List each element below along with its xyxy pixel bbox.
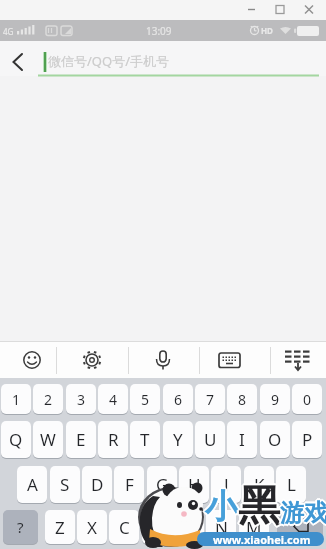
- staticText: 黑: [237, 481, 279, 534]
- button[interactable]: 2: [33, 384, 63, 414]
- staticText: 13:09: [146, 24, 172, 38]
- staticText: 小: [206, 485, 239, 527]
- button[interactable]: X: [77, 510, 107, 544]
- staticText: 游戏: [280, 496, 326, 526]
- button[interactable]: G: [147, 466, 177, 503]
- button[interactable]: U: [195, 421, 225, 458]
- staticText: 黑: [239, 479, 281, 532]
- button[interactable]: Z: [45, 510, 75, 544]
- staticText: 游戏: [278, 498, 326, 528]
- button[interactable]: 5: [130, 384, 160, 414]
- staticText: A: [27, 473, 38, 496]
- staticText: H: [188, 473, 201, 496]
- staticText: 7: [206, 390, 215, 409]
- staticText: 小: [204, 485, 237, 527]
- staticText: 游戏: [280, 498, 326, 528]
- button[interactable]: B: [174, 510, 204, 544]
- staticText: 微信号/QQ号/手机号: [48, 52, 169, 70]
- staticText: 9: [271, 390, 280, 409]
- button[interactable]: S: [50, 466, 80, 503]
- staticText: 黑: [236, 480, 278, 533]
- staticText: I: [239, 428, 245, 451]
- button[interactable]: 0: [292, 384, 322, 414]
- staticText: N: [215, 516, 228, 539]
- staticText: www.xiaohei.com: [213, 532, 311, 546]
- staticText: ?: [17, 517, 24, 537]
- button[interactable]: ?: [3, 510, 38, 544]
- button[interactable]: P: [292, 421, 322, 458]
- staticText: M: [246, 516, 262, 539]
- button[interactable]: 1: [1, 384, 31, 414]
- staticText: 小: [204, 487, 237, 529]
- button[interactable]: D: [82, 466, 112, 503]
- staticText: E: [76, 428, 86, 451]
- button[interactable]: [277, 510, 323, 544]
- staticText: 小: [205, 484, 238, 526]
- staticText: S: [60, 473, 70, 496]
- staticText: 0: [303, 390, 312, 409]
- staticText: 游戏: [281, 499, 326, 529]
- button[interactable]: K: [244, 466, 274, 503]
- button[interactable]: [56, 342, 128, 378]
- staticText: U: [204, 428, 217, 451]
- staticText: K: [254, 473, 265, 496]
- staticText: T: [140, 428, 150, 451]
- staticText: 黑: [238, 482, 280, 535]
- button[interactable]: F: [114, 466, 144, 503]
- staticText: HD: [261, 25, 273, 36]
- button[interactable]: [0, 41, 326, 76]
- button[interactable]: [199, 342, 270, 378]
- staticText: 黑: [240, 480, 282, 533]
- button[interactable]: 3: [66, 384, 96, 414]
- staticText: 3: [77, 390, 86, 409]
- staticText: P: [302, 428, 313, 451]
- staticText: J: [224, 473, 229, 496]
- button[interactable]: O: [260, 421, 290, 458]
- button[interactable]: M: [239, 510, 269, 544]
- button[interactable]: H: [179, 466, 209, 503]
- staticText: Z: [55, 516, 65, 539]
- button[interactable]: N: [206, 510, 236, 544]
- button[interactable]: Q: [1, 421, 31, 458]
- button[interactable]: 8: [227, 384, 257, 414]
- staticText: 小: [206, 487, 239, 529]
- button[interactable]: C: [109, 510, 139, 544]
- staticText: B: [183, 516, 195, 539]
- staticText: R: [108, 428, 119, 451]
- staticText: 游戏: [279, 499, 326, 529]
- staticText: 黑: [237, 479, 279, 532]
- staticText: Q: [9, 428, 23, 451]
- staticText: C: [119, 516, 130, 539]
- staticText: 黑: [238, 480, 280, 533]
- staticText: O: [268, 428, 282, 451]
- staticText: D: [91, 473, 104, 496]
- button[interactable]: 7: [195, 384, 225, 414]
- button[interactable]: Y: [163, 421, 193, 458]
- button[interactable]: V: [142, 510, 172, 544]
- staticText: 6: [174, 390, 183, 409]
- staticText: 4G: [3, 26, 14, 37]
- staticText: 2: [44, 390, 53, 409]
- button[interactable]: I: [227, 421, 257, 458]
- button[interactable]: 4: [98, 384, 128, 414]
- button[interactable]: L: [276, 466, 306, 503]
- staticText: 游戏: [279, 497, 326, 527]
- button[interactable]: [128, 342, 199, 378]
- button[interactable]: [270, 342, 326, 378]
- button[interactable]: [0, 342, 56, 378]
- button[interactable]: W: [33, 421, 63, 458]
- staticText: L: [287, 473, 296, 496]
- staticText: F: [125, 473, 134, 496]
- button[interactable]: 9: [260, 384, 290, 414]
- staticText: 小: [205, 486, 238, 528]
- button[interactable]: A: [17, 466, 47, 503]
- staticText: V: [152, 516, 163, 539]
- button[interactable]: R: [98, 421, 128, 458]
- button[interactable]: 6: [163, 384, 193, 414]
- button[interactable]: J: [211, 466, 241, 503]
- staticText: 小: [207, 486, 240, 528]
- staticText: 小: [205, 488, 238, 530]
- staticText: 1: [12, 390, 21, 409]
- button[interactable]: T: [130, 421, 160, 458]
- button[interactable]: E: [66, 421, 96, 458]
